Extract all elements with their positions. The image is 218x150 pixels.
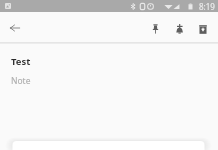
staticText: Test: [11, 55, 31, 68]
button[interactable]: Back: [3, 16, 27, 40]
staticText: 8:19: [199, 1, 215, 12]
button[interactable]: Archive: [191, 16, 215, 40]
staticText: Note: [11, 75, 31, 87]
button[interactable]: Pin: [143, 16, 167, 40]
button[interactable]: Reminder: [167, 16, 191, 40]
